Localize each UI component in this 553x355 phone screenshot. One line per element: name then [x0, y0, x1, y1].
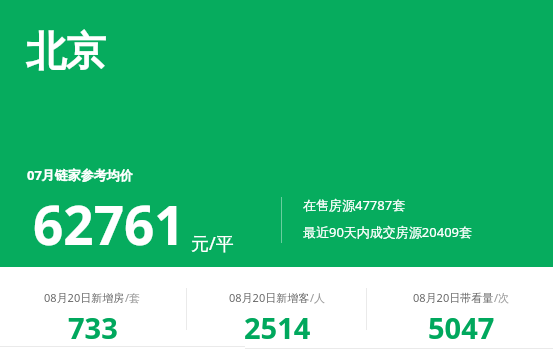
staticText: 08月20日带看量 [413, 290, 494, 305]
staticText: 08月20日新增客 [229, 290, 310, 305]
staticText: 07月链家参考均价 [27, 166, 133, 184]
button[interactable]: 08月20日新增房 [0, 290, 185, 347]
staticText: /次 [494, 290, 510, 305]
button[interactable]: 08月20日带看量 [369, 290, 553, 347]
staticText: /人 [310, 290, 326, 305]
staticText: 元/平 [191, 231, 234, 256]
button[interactable]: 08月20日新增客 [185, 290, 369, 347]
button[interactable]: 在售房源47787套 [303, 196, 473, 241]
staticText: 733 [68, 308, 118, 347]
staticText: 2514 [244, 308, 311, 347]
staticText: 08月20日新增房 [44, 290, 125, 305]
staticText: 62761 [33, 188, 185, 260]
staticText: 最近90天内成交房源20409套 [303, 223, 473, 241]
button[interactable]: 北京 [26, 26, 106, 76]
staticText: 5047 [428, 308, 495, 347]
staticText: /套 [125, 290, 141, 305]
staticText: 在售房源47787套 [303, 196, 406, 214]
